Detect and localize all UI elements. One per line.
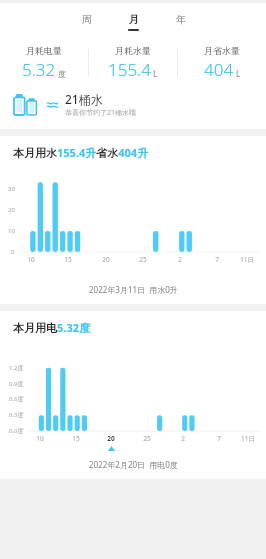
staticText: L xyxy=(236,68,241,79)
staticText: 0.0度 xyxy=(9,427,24,435)
staticText: 年 xyxy=(176,13,186,26)
staticText: 11日 xyxy=(241,434,255,443)
staticText: 0.3度 xyxy=(9,411,24,419)
button[interactable]: 21桶水 xyxy=(0,89,266,129)
staticText: 度 xyxy=(58,69,66,79)
staticText: 15 xyxy=(64,255,72,264)
staticText: 周 xyxy=(82,13,92,26)
staticText: 0.9度 xyxy=(9,380,24,388)
button[interactable]: 月耗水量 xyxy=(89,45,177,81)
staticText: 1.2度 xyxy=(9,364,24,372)
button[interactable]: 周 xyxy=(74,12,99,32)
staticText: 20 xyxy=(102,255,110,264)
staticText: 2022年2月20日 用电0度 xyxy=(89,459,178,470)
staticText: 11日 xyxy=(240,255,254,264)
staticText: 0 xyxy=(11,248,15,256)
staticText: 25 xyxy=(139,255,147,264)
staticText: 2022年3月11日 用水0升 xyxy=(89,284,178,295)
button[interactable]: 月耗电量 xyxy=(0,45,88,81)
button[interactable]: 月 xyxy=(121,12,146,32)
staticText: 10 xyxy=(8,227,15,235)
staticText: 2 xyxy=(181,434,185,443)
staticText: 30 xyxy=(8,185,15,193)
staticText: 155.4 xyxy=(108,58,151,81)
staticText: 月耗电量 xyxy=(26,45,62,56)
staticText: 25 xyxy=(143,434,151,443)
staticText: 404 xyxy=(204,58,234,81)
staticText: 0.6度 xyxy=(9,395,24,403)
staticText: 月省水量 xyxy=(204,45,240,56)
staticText: 10 xyxy=(27,255,35,264)
staticText: 5.32 xyxy=(22,58,56,81)
staticText: 10 xyxy=(36,434,44,443)
staticText: L xyxy=(153,68,158,79)
staticText: 恭喜你节约了21桶水哦 xyxy=(65,108,137,118)
staticText: 本月用电5.32度 xyxy=(13,320,90,335)
staticText: 2 xyxy=(178,255,182,264)
staticText: 月耗水量 xyxy=(115,45,151,56)
staticText: 20 xyxy=(8,206,15,214)
staticText: 20 xyxy=(107,434,115,443)
staticText: 21桶水 xyxy=(65,91,103,107)
staticText: 7 xyxy=(217,434,221,443)
button[interactable]: 年 xyxy=(168,12,193,32)
staticText: 15 xyxy=(72,434,80,443)
staticText: 7 xyxy=(215,255,219,264)
staticText: 月 xyxy=(129,13,139,26)
button[interactable]: 月省水量 xyxy=(178,45,266,81)
staticText: 本月用水155.4升省水404升 xyxy=(13,145,149,160)
